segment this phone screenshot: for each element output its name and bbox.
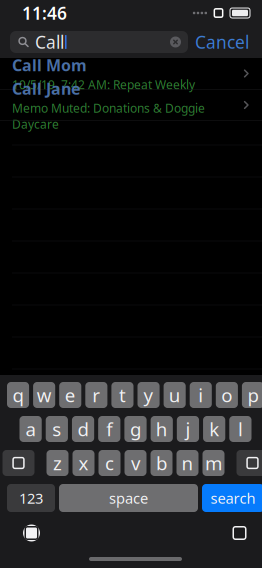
staticText: g [130, 417, 141, 441]
staticText: n [181, 451, 193, 475]
button[interactable]: j [177, 416, 199, 442]
button[interactable]: w [33, 382, 55, 408]
staticText: q [13, 383, 24, 407]
button[interactable]: Dictation [222, 518, 256, 548]
staticText: Memo Muted: Donations & Doggie Daycare [12, 100, 205, 132]
button[interactable]: q [7, 382, 29, 408]
button[interactable]: v [124, 450, 146, 476]
staticText: p [247, 383, 258, 407]
staticText: d [78, 417, 89, 441]
staticText: b [156, 451, 167, 475]
button[interactable]: k [203, 416, 225, 442]
staticText: Call Jane [12, 78, 81, 99]
staticText: k [209, 417, 219, 441]
button[interactable]: m [202, 450, 224, 476]
button[interactable]: r [85, 382, 107, 408]
button[interactable]: d [72, 416, 94, 442]
staticText: a [26, 417, 36, 441]
button[interactable]: Call Mom [0, 58, 262, 89]
button[interactable]: Shift [2, 450, 34, 476]
button[interactable]: i [190, 382, 212, 408]
staticText: u [169, 383, 181, 407]
button[interactable]: Search field, Call [10, 31, 188, 53]
button[interactable]: Cancel [188, 31, 256, 53]
button[interactable]: z [46, 450, 68, 476]
button[interactable]: n [176, 450, 198, 476]
staticText: s [52, 417, 61, 441]
staticText: y [144, 383, 154, 407]
button[interactable]: t [111, 382, 133, 408]
button[interactable]: search [202, 484, 262, 512]
button[interactable]: y [137, 382, 160, 408]
staticText: search [210, 488, 255, 508]
staticText: z [53, 451, 62, 475]
button[interactable]: c [98, 450, 120, 476]
button[interactable]: 123 [7, 484, 55, 512]
staticText: i [198, 383, 203, 407]
staticText: w [37, 383, 52, 407]
staticText: x [78, 451, 88, 475]
staticText: c [105, 451, 114, 475]
button[interactable]: l [229, 416, 251, 442]
button[interactable]: s [46, 416, 68, 442]
staticText: h [156, 417, 168, 441]
button[interactable]: Call Jane [0, 89, 262, 121]
button[interactable]: e [59, 382, 81, 408]
button[interactable]: a [19, 416, 42, 442]
staticText: m [205, 451, 222, 475]
staticText: space [109, 488, 148, 508]
staticText: t [119, 383, 126, 407]
staticText: v [131, 451, 140, 475]
staticText: j [185, 417, 190, 441]
staticText: o [221, 383, 232, 407]
button[interactable]: h [151, 416, 173, 442]
staticText: 10/5/19, 7:42 AM: Repeat Weekly [12, 77, 195, 93]
button[interactable]: f [98, 416, 120, 442]
staticText: l [238, 417, 243, 441]
staticText: 123 [19, 488, 43, 508]
button[interactable]: Delete [236, 450, 262, 476]
staticText: f [106, 417, 112, 441]
button[interactable]: p [242, 382, 262, 408]
button[interactable]: u [164, 382, 186, 408]
button[interactable]: x [72, 450, 94, 476]
staticText: Call Mom [12, 54, 87, 76]
staticText: Cancel [195, 30, 249, 53]
staticText: e [65, 383, 76, 407]
button[interactable]: space [59, 484, 198, 512]
staticText: 11:46 [22, 1, 67, 24]
staticText: r [92, 383, 100, 407]
button[interactable]: b [150, 450, 172, 476]
button[interactable]: g [124, 416, 147, 442]
staticText: Call [35, 30, 64, 53]
button[interactable]: Emoji keyboard [14, 518, 48, 548]
button[interactable]: o [216, 382, 238, 408]
